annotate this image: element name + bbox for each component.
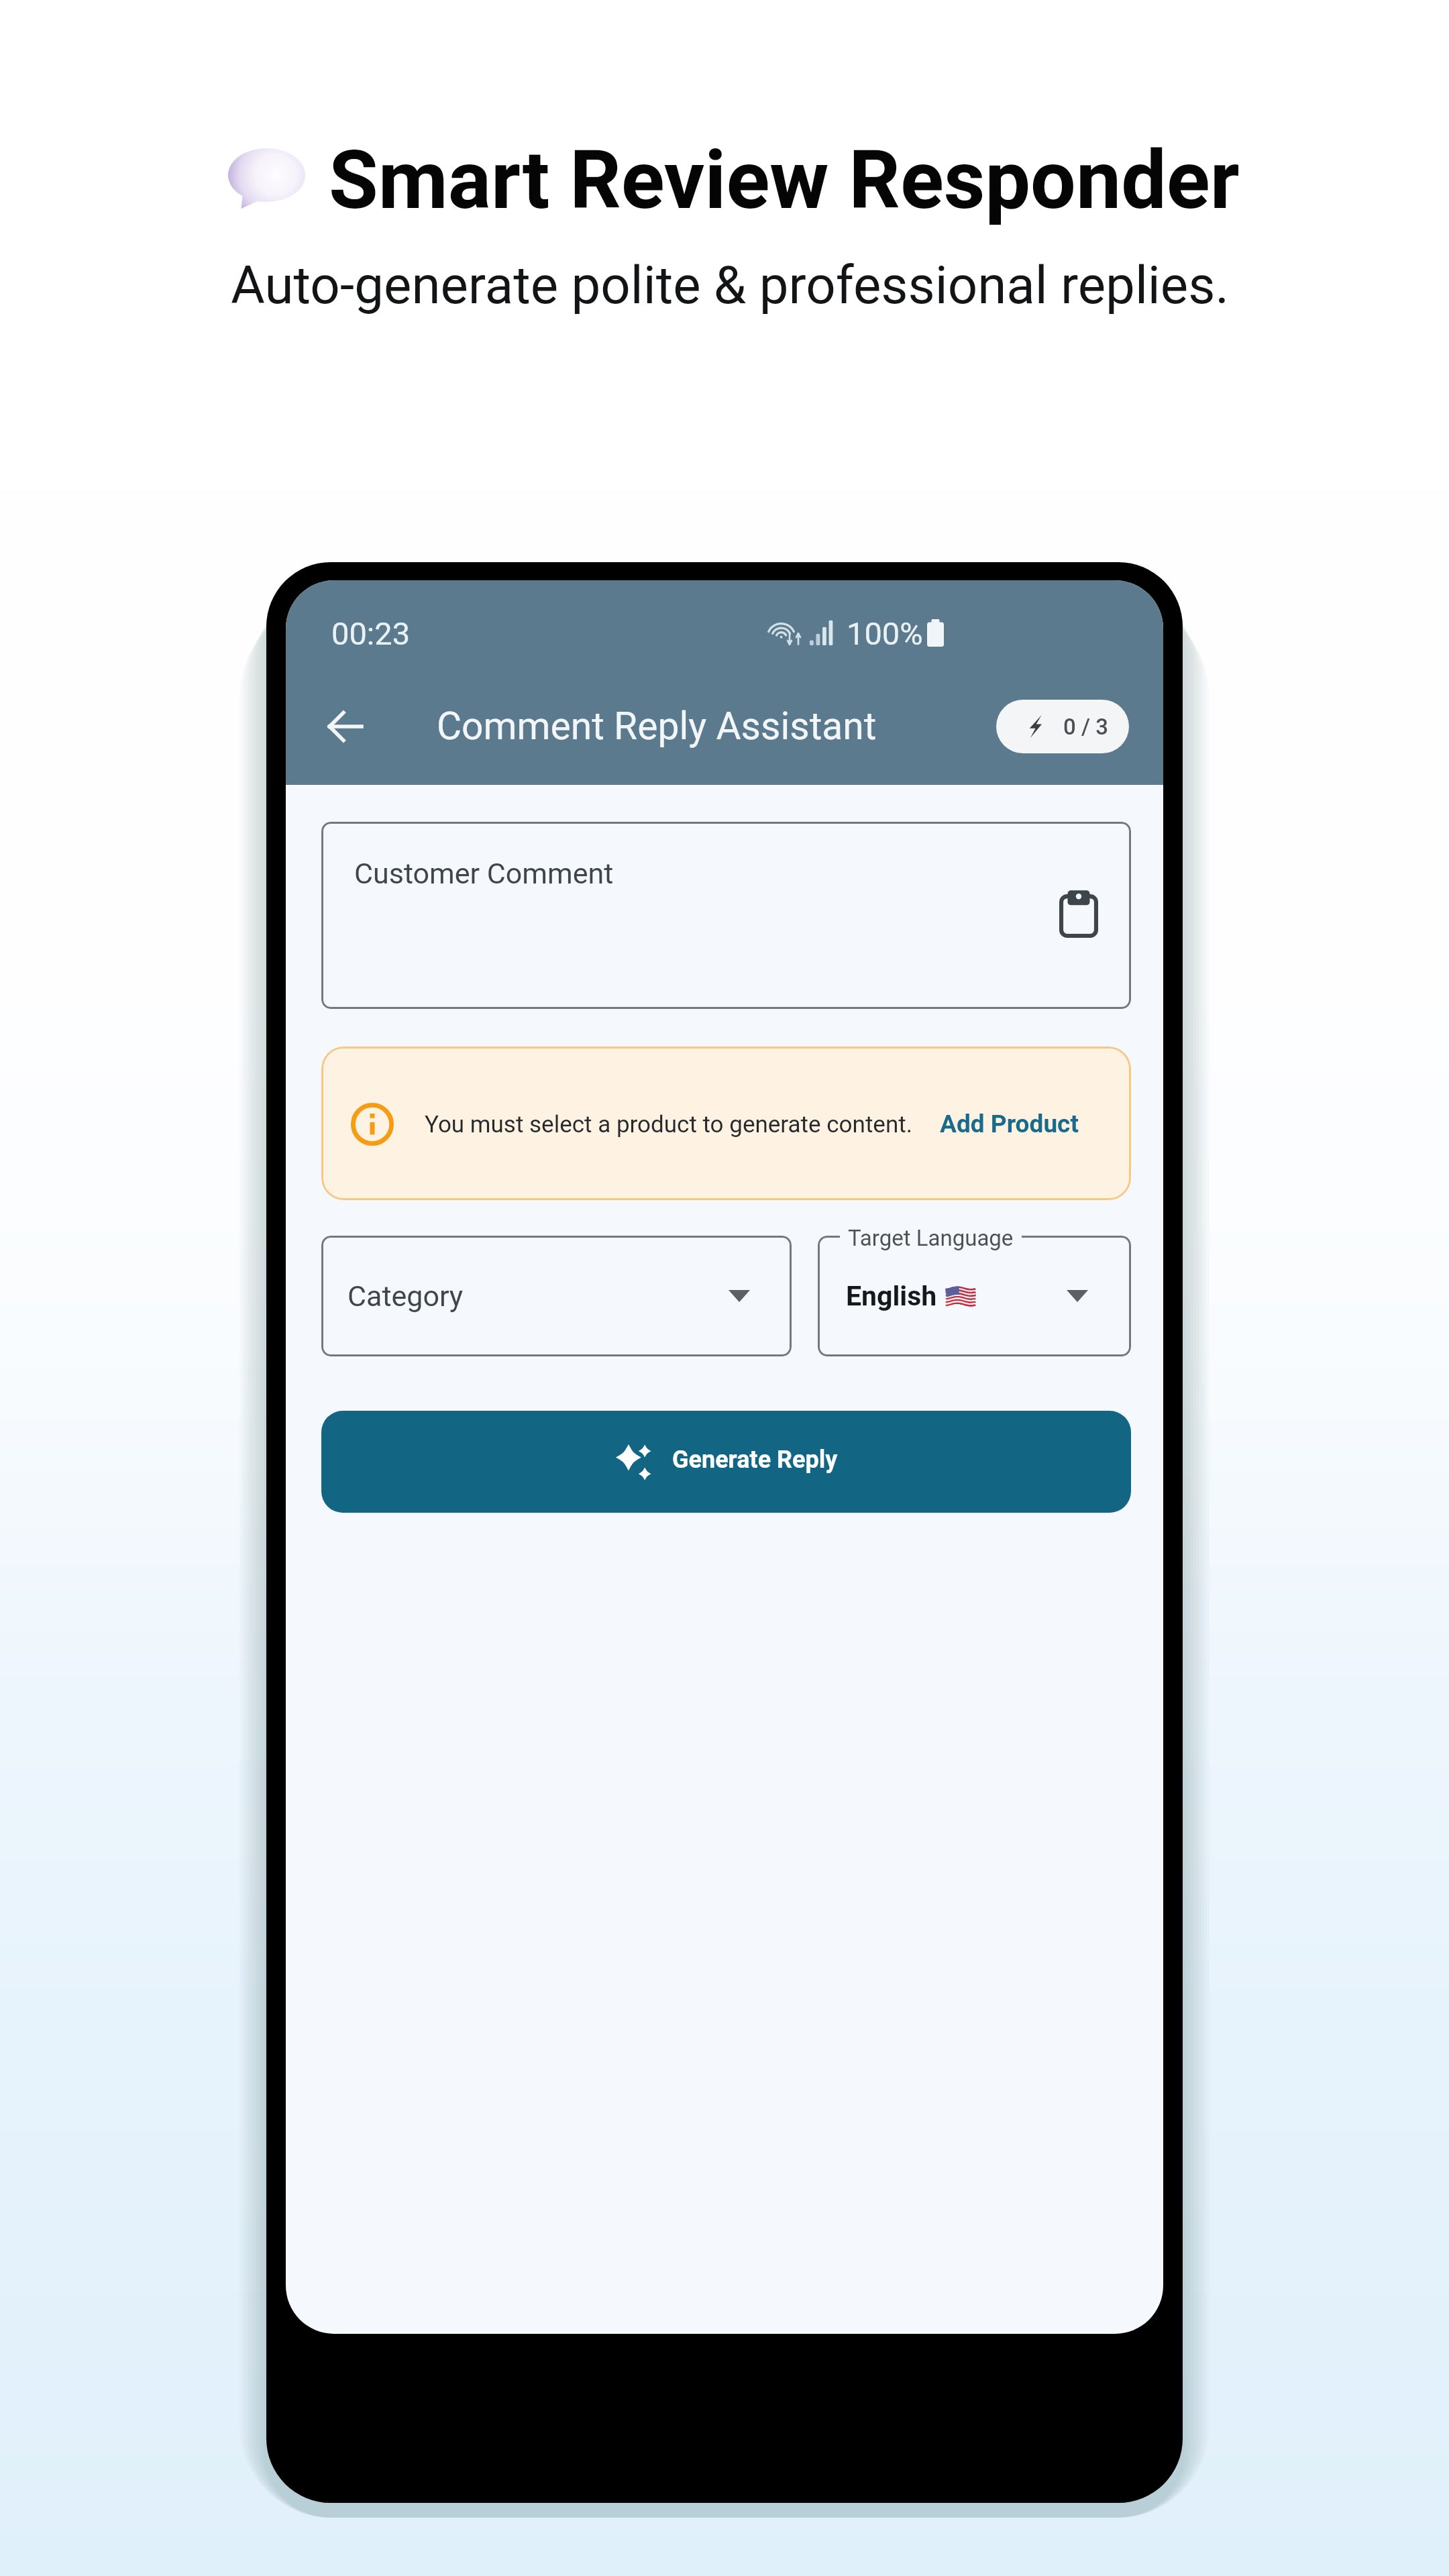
staticText: Target Language [848,1225,1014,1251]
button[interactable]: Generate Reply [321,1411,1131,1513]
staticText: 00:23 [331,615,411,652]
button[interactable]: English [818,1236,1131,1356]
staticText: Generate Reply [672,1446,838,1474]
button[interactable]: Category [321,1236,792,1356]
staticText: Customer Comment [354,857,614,890]
button[interactable]: Back [314,696,374,757]
button[interactable]: 0 / 3 [996,700,1129,753]
staticText: Add Product [940,1110,1079,1138]
staticText: English [846,1280,937,1312]
staticText: 100% [847,615,923,652]
staticText: Smart Review Responder [329,133,1240,228]
staticText: Auto-generate polite & professional repl… [231,255,1230,316]
staticText: 0 / 3 [1063,714,1109,740]
staticText: Category [347,1279,464,1313]
button[interactable]: Customer Comment [321,822,1131,1009]
button[interactable]: You must select a product to generate co… [321,1046,1131,1200]
staticText: Comment Reply Assistant [437,704,877,749]
staticText: You must select a product to generate co… [425,1111,912,1138]
